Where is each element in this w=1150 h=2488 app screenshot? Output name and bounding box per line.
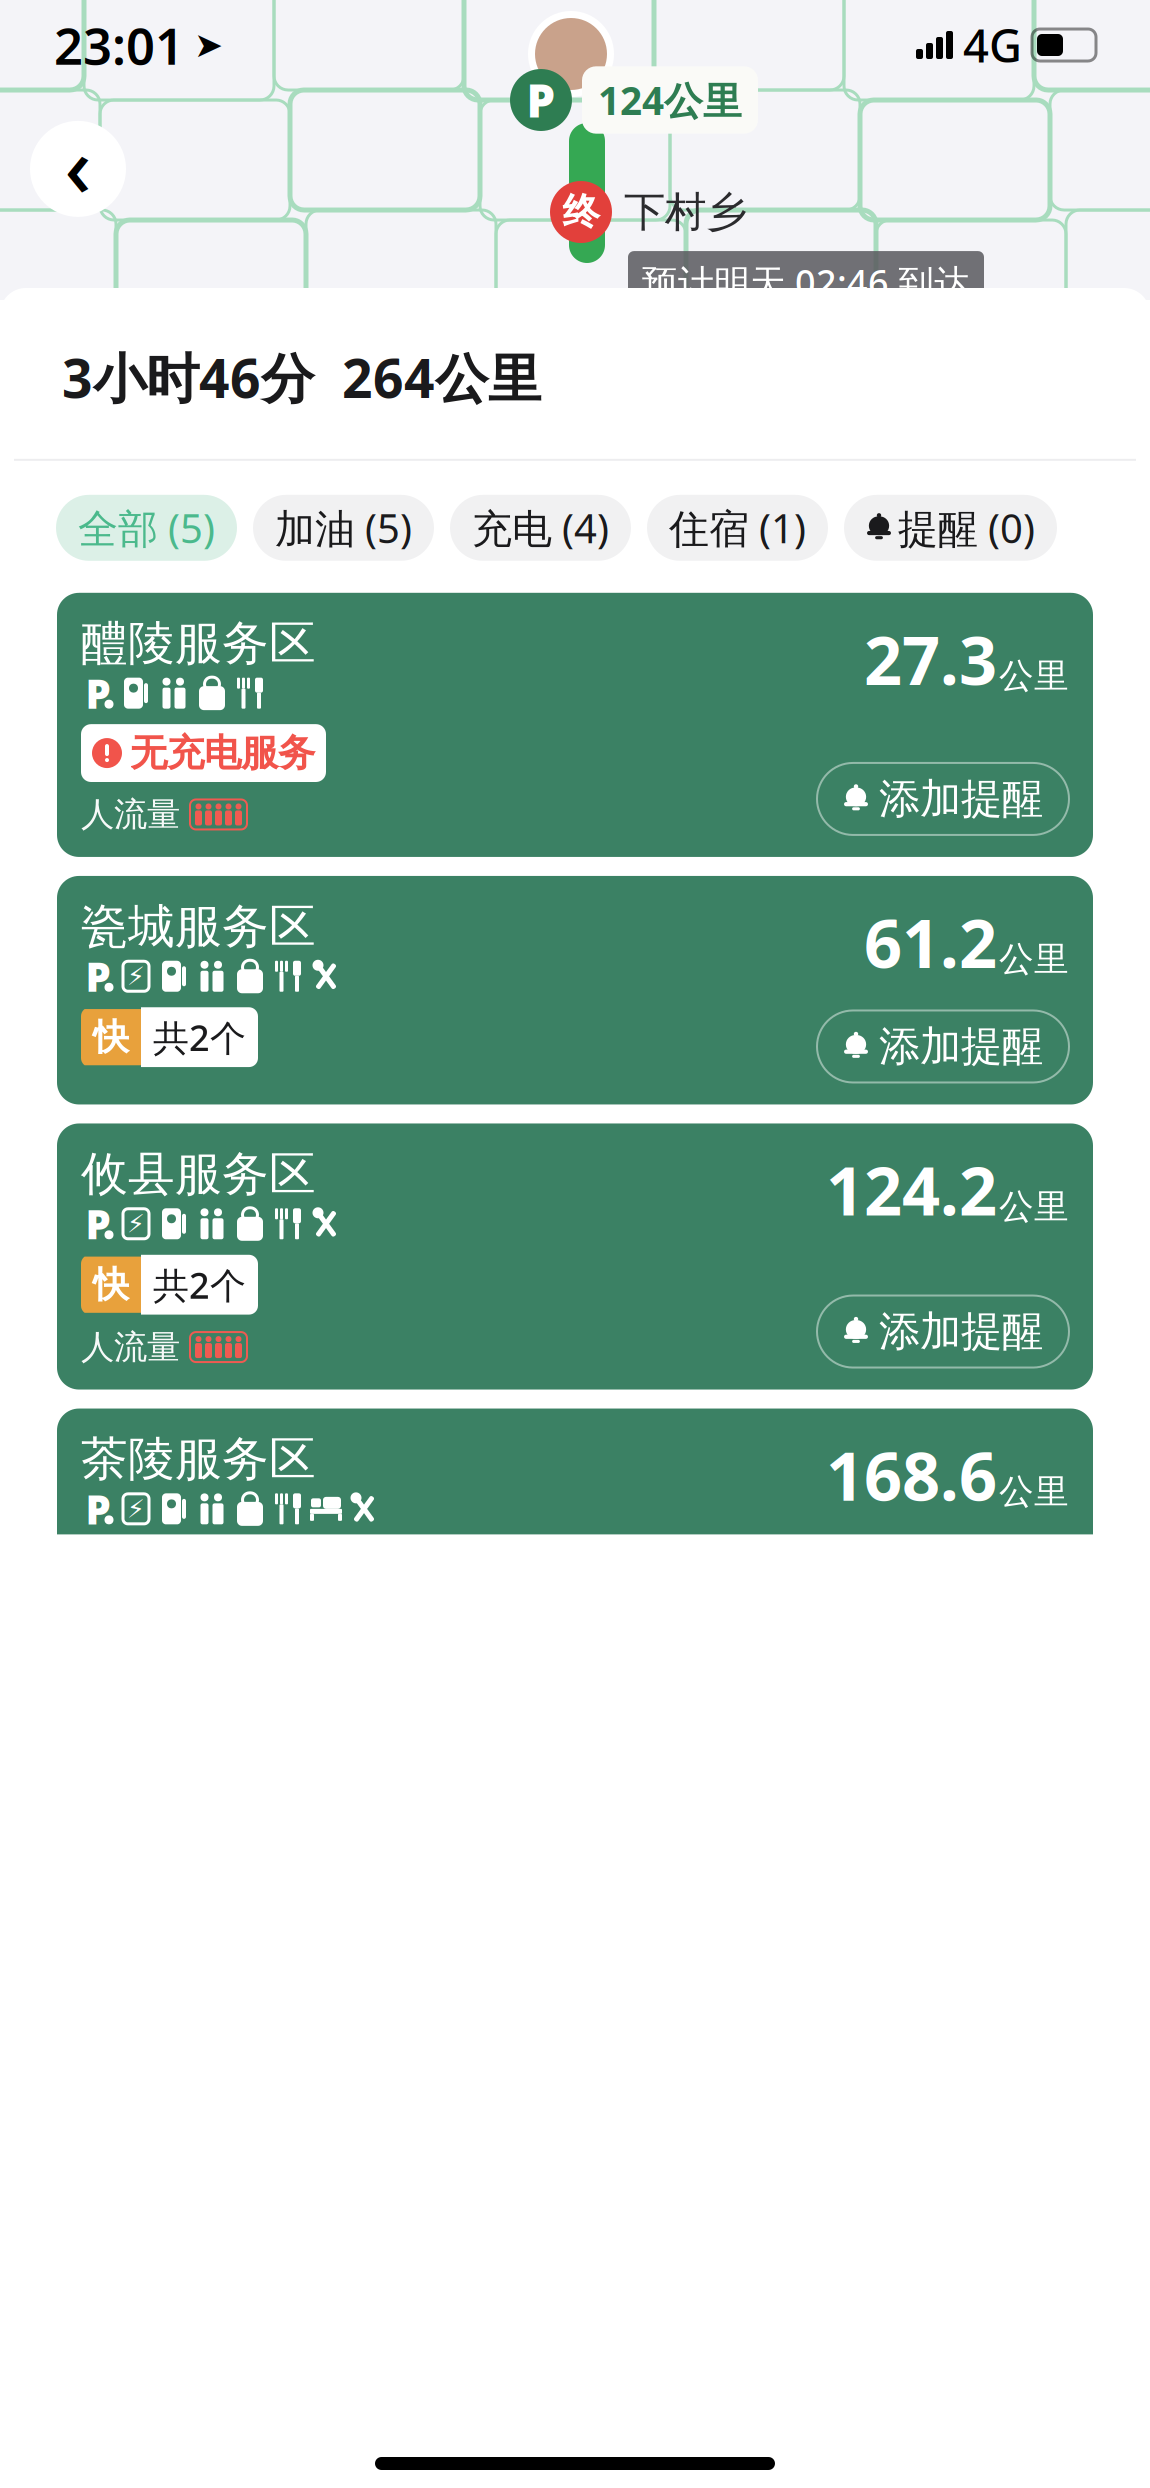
staticText: 全部 (5) [78, 501, 215, 554]
staticText: 人流量 [81, 1327, 180, 1367]
staticText: 茶陵服务区 [81, 1430, 316, 1488]
button[interactable]: 茶陵服务区 [57, 1408, 1093, 1675]
staticText: 快 [93, 1263, 129, 1307]
staticText: 加油 (5) [275, 501, 412, 554]
button[interactable]: 加油 (5) [253, 495, 434, 561]
staticText: 人流量 [81, 794, 180, 835]
staticText: 提醒 (0) [898, 501, 1035, 554]
staticText: 公里 [999, 655, 1069, 697]
staticText: 终 [562, 189, 599, 235]
staticText: 攸县服务区 [81, 1145, 316, 1203]
staticText: 61.2 [864, 898, 997, 986]
staticText: P [85, 1197, 110, 1250]
button[interactable]: 添加提醒 [817, 1295, 1069, 1367]
button[interactable]: 住宿 (1) [647, 495, 828, 561]
button[interactable]: 提醒 (0) [844, 495, 1057, 561]
staticText: 23:01 [54, 11, 184, 79]
button[interactable]: 全部 (5) [56, 495, 237, 561]
staticText: 公里 [999, 1470, 1069, 1513]
staticText: 添加提醒 [879, 1306, 1043, 1357]
staticText: 充电 (4) [472, 501, 609, 554]
button[interactable]: 瓷城服务区 [57, 876, 1093, 1104]
staticText: 醴陵服务区 [81, 615, 316, 672]
staticText: 无充电服务 [130, 730, 315, 776]
staticText: P [526, 70, 555, 130]
button[interactable]: 醴陵服务区 [57, 593, 1093, 857]
staticText: ⚡︎ [127, 1494, 145, 1523]
staticText: 168.6 [826, 1430, 997, 1519]
staticText: ‹ [64, 110, 91, 220]
staticText: P [85, 950, 110, 1003]
staticText: 快 [93, 1015, 129, 1059]
staticText: ⚡︎ [127, 1209, 145, 1238]
staticText: 124.2 [826, 1145, 997, 1234]
button[interactable]: 攸县服务区 [57, 1123, 1093, 1390]
staticText: ⚡︎ [127, 962, 145, 991]
staticText: 下村乡 [624, 187, 747, 237]
button[interactable]: 添加提醒 [817, 1010, 1069, 1082]
staticText: 124公里 [598, 74, 742, 126]
staticText: 公里 [999, 938, 1069, 980]
staticText: 4G [963, 15, 1022, 75]
staticText: 添加提醒 [879, 1021, 1043, 1072]
staticText: 添加提醒 [879, 774, 1043, 824]
staticText: 共2个 [153, 1261, 246, 1309]
staticText: 共2个 [153, 1013, 246, 1061]
staticText: 预计明天 02:46 到达 [642, 258, 970, 306]
staticText: 27.3 [864, 615, 997, 703]
staticText: 住宿 (1) [669, 501, 806, 554]
staticText: ➤ [194, 25, 223, 65]
button[interactable]: 充电 (4) [450, 495, 631, 561]
button[interactable]: 添加提醒 [817, 763, 1069, 835]
staticText: P [85, 667, 110, 720]
staticText: 3小时46分 264公里 [62, 342, 541, 413]
button[interactable]: 返回 [30, 110, 126, 228]
staticText: 瓷城服务区 [81, 898, 316, 955]
staticText: P [85, 1482, 110, 1535]
staticText: 公里 [999, 1185, 1069, 1228]
